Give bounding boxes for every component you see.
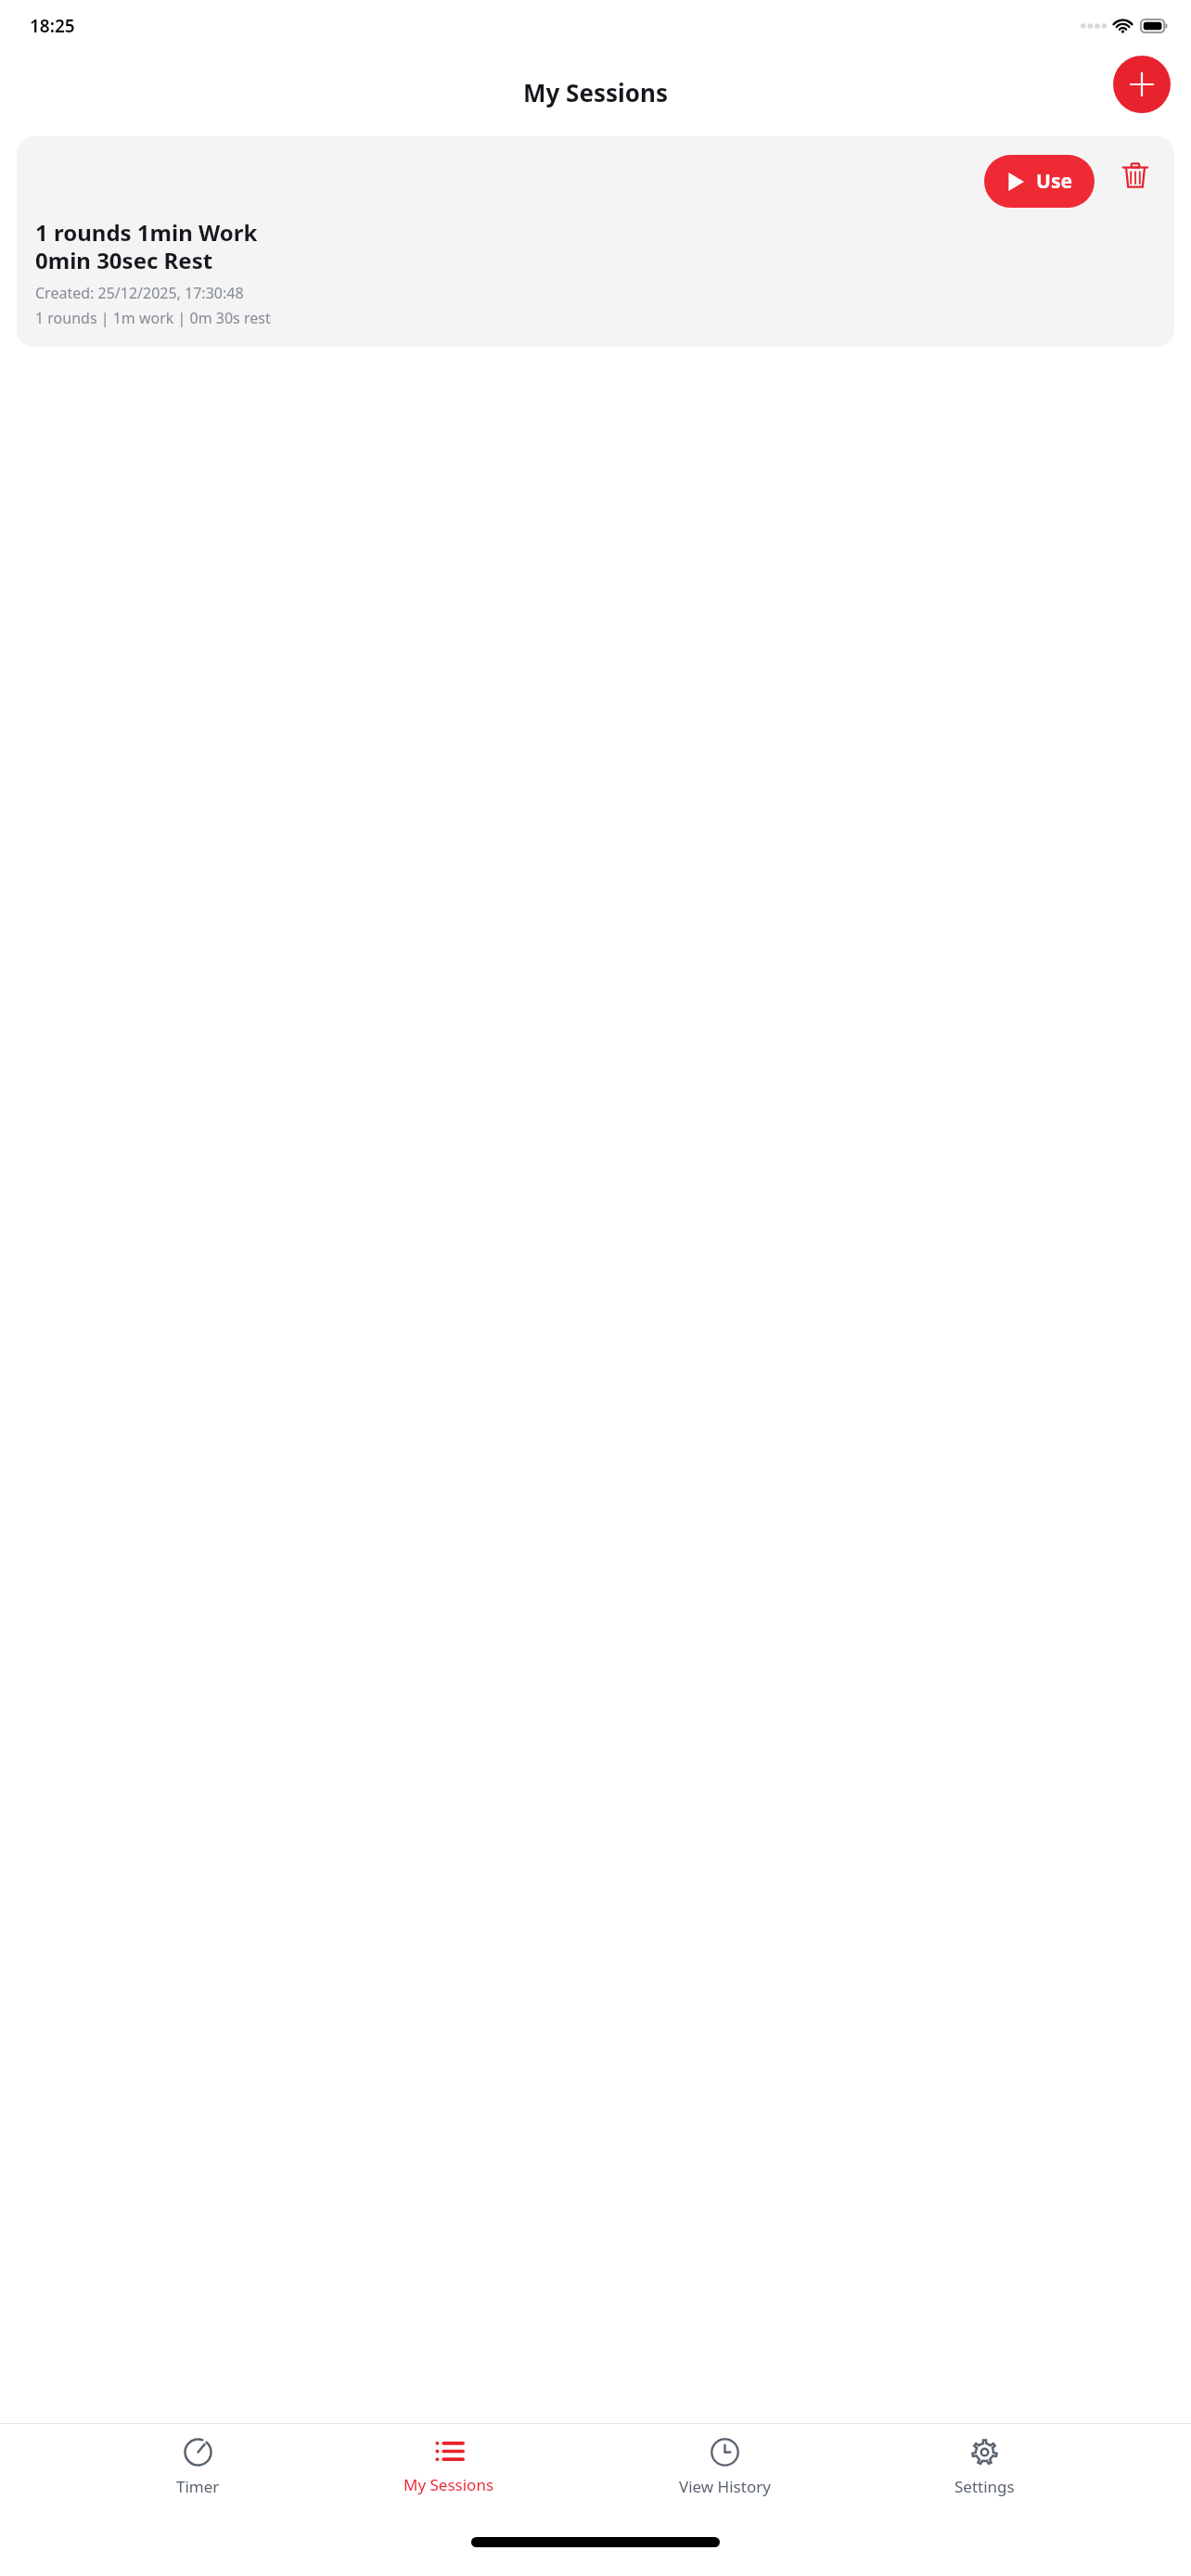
button[interactable]: View History	[672, 2424, 778, 2528]
staticText: Timer	[176, 2476, 220, 2497]
button[interactable]: Use	[17, 136, 1174, 347]
staticText: Settings	[954, 2476, 1015, 2497]
staticText: 1 rounds | 1m work | 0m 30s rest	[35, 308, 271, 328]
staticText: My Sessions	[0, 76, 1191, 108]
staticText: My Sessions	[403, 2474, 494, 2495]
staticText: 1 rounds 1min Work 0min 30sec Rest	[35, 217, 258, 275]
button[interactable]: Use	[984, 155, 1095, 208]
staticText: Created: 25/12/2025, 17:30:48	[35, 283, 244, 303]
button[interactable]: Delete session	[1115, 155, 1156, 196]
button[interactable]: Timer	[169, 2424, 227, 2528]
staticText: Use	[1036, 168, 1072, 195]
staticText: View History	[679, 2476, 771, 2497]
staticText: 18:25	[30, 14, 75, 38]
button[interactable]: Add session	[1113, 56, 1171, 113]
button[interactable]: My Sessions	[396, 2424, 502, 2528]
button[interactable]: Settings	[947, 2424, 1022, 2528]
